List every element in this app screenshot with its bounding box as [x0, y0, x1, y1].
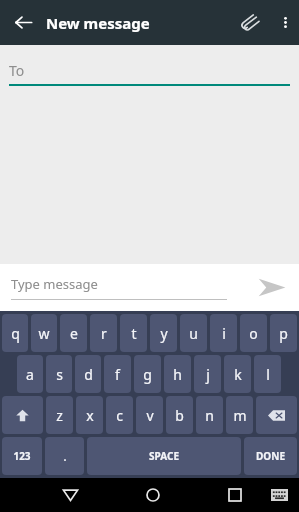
- button[interactable]: Recent apps: [211, 478, 259, 512]
- staticText: To: [9, 61, 25, 80]
- staticText: u: [189, 324, 198, 343]
- button[interactable]: i: [210, 314, 237, 352]
- staticText: y: [160, 324, 168, 343]
- button[interactable]: q: [2, 314, 28, 352]
- staticText: .: [63, 447, 67, 465]
- button[interactable]: Send: [243, 264, 299, 311]
- button[interactable]: Navigate up: [0, 0, 46, 45]
- staticText: s: [56, 365, 63, 384]
- button[interactable]: w: [31, 314, 57, 352]
- staticText: 123: [13, 449, 31, 463]
- button[interactable]: Switch keyboard: [259, 478, 299, 512]
- button[interactable]: x: [76, 396, 103, 434]
- button[interactable]: Attach file: [227, 0, 271, 45]
- staticText: i: [222, 324, 226, 343]
- staticText: o: [249, 324, 258, 343]
- staticText: n: [205, 406, 214, 425]
- button[interactable]: n: [196, 396, 223, 434]
- button[interactable]: d: [75, 355, 101, 393]
- staticText: c: [116, 406, 123, 425]
- staticText: v: [146, 406, 154, 425]
- button[interactable]: To: [9, 60, 290, 80]
- button[interactable]: DONE: [244, 437, 297, 475]
- staticText: m: [233, 406, 247, 425]
- button[interactable]: e: [60, 314, 87, 352]
- staticText: SPACE: [149, 449, 179, 463]
- staticText: b: [175, 406, 184, 425]
- button[interactable]: r: [90, 314, 117, 352]
- button[interactable]: o: [240, 314, 267, 352]
- button[interactable]: t: [120, 314, 147, 352]
- button[interactable]: Backspace: [256, 396, 297, 434]
- button[interactable]: More options: [271, 0, 299, 45]
- staticText: r: [101, 324, 107, 343]
- button[interactable]: y: [150, 314, 177, 352]
- staticText: DONE: [256, 449, 285, 463]
- button[interactable]: f: [104, 355, 131, 393]
- button[interactable]: z: [46, 396, 73, 434]
- button[interactable]: u: [180, 314, 207, 352]
- staticText: f: [115, 365, 120, 384]
- staticText: j: [206, 365, 210, 384]
- staticText: Type message: [11, 275, 227, 293]
- button[interactable]: h: [164, 355, 191, 393]
- button[interactable]: Home: [127, 478, 179, 512]
- button[interactable]: g: [134, 355, 161, 393]
- button[interactable]: s: [46, 355, 72, 393]
- button[interactable]: 123: [2, 437, 42, 475]
- button[interactable]: k: [224, 355, 251, 393]
- staticText: p: [279, 324, 288, 343]
- button[interactable]: a: [17, 355, 43, 393]
- staticText: e: [70, 324, 78, 343]
- staticText: h: [173, 365, 182, 384]
- staticText: New message: [46, 13, 227, 33]
- button[interactable]: p: [270, 314, 297, 352]
- button[interactable]: j: [194, 355, 221, 393]
- staticText: g: [143, 365, 152, 384]
- button[interactable]: v: [136, 396, 163, 434]
- staticText: d: [84, 365, 93, 384]
- staticText: w: [38, 324, 50, 343]
- button[interactable]: b: [166, 396, 193, 434]
- staticText: a: [26, 365, 34, 384]
- button[interactable]: .: [45, 437, 84, 475]
- button[interactable]: l: [254, 355, 281, 393]
- button[interactable]: Type message: [11, 275, 227, 300]
- button[interactable]: SPACE: [87, 437, 241, 475]
- staticText: k: [234, 365, 242, 384]
- staticText: q: [11, 324, 20, 343]
- button[interactable]: c: [106, 396, 133, 434]
- button[interactable]: Back: [44, 478, 96, 512]
- button[interactable]: Shift: [2, 396, 43, 434]
- staticText: l: [266, 365, 270, 384]
- button[interactable]: m: [226, 396, 253, 434]
- staticText: t: [131, 324, 137, 343]
- staticText: z: [56, 406, 63, 425]
- staticText: x: [86, 406, 94, 425]
